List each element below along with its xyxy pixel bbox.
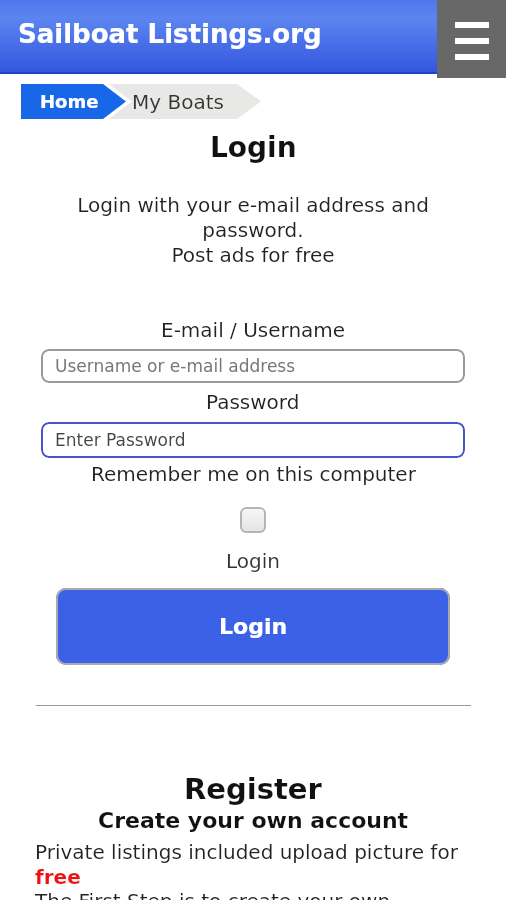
button[interactable]: Enter Password [41,422,465,458]
button[interactable] [240,507,266,533]
staticText: The First Step is to create your own [35,889,391,900]
button[interactable] [437,0,506,78]
staticText: Login [219,614,288,640]
staticText: Home [40,91,99,112]
button[interactable]: Username or e-mail address [41,349,465,383]
staticText: Sailboat Listings.org [18,19,322,49]
button[interactable]: Login [56,588,450,665]
staticText: Password [206,390,300,413]
staticText: Enter Password [55,430,186,450]
button[interactable]: My Boats [132,90,224,113]
staticText: Register [184,772,322,806]
staticText: Create your own account [98,808,409,834]
button[interactable]: Home [40,91,99,112]
staticText: Login with your e-mail address and passw… [0,193,506,267]
staticText: free [35,865,81,888]
staticText: My Boats [132,90,224,113]
staticText: E-mail / Username [161,318,346,341]
staticText: Login [226,549,280,572]
staticText: Private listings included upload picture… [35,840,458,863]
staticText: Username or e-mail address [55,356,296,376]
staticText: Login [210,131,297,164]
staticText: Remember me on this computer [91,462,416,485]
